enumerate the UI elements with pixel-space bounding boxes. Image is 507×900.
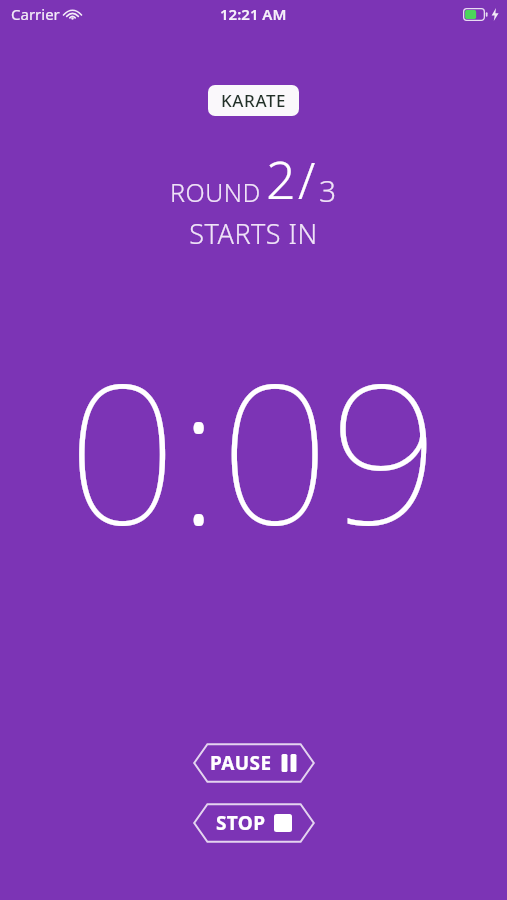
staticText: 2 bbox=[266, 143, 296, 214]
staticText: ROUND bbox=[170, 175, 261, 209]
staticText: STOP bbox=[216, 810, 266, 836]
staticText: / bbox=[298, 146, 316, 214]
other: Stop bbox=[274, 814, 292, 832]
staticText: KARATE bbox=[221, 89, 287, 112]
staticText: 3 bbox=[319, 170, 337, 211]
staticText: Carrier bbox=[11, 4, 60, 24]
button[interactable]: STOP bbox=[193, 803, 315, 843]
staticText: 12:21 AM bbox=[220, 4, 287, 24]
staticText: STARTS IN bbox=[189, 215, 318, 252]
button[interactable]: KARATE bbox=[208, 85, 299, 116]
other: Pause bbox=[280, 754, 298, 772]
button[interactable]: PAUSE bbox=[193, 743, 315, 783]
staticText: PAUSE bbox=[210, 750, 272, 776]
staticText: 0:09 bbox=[67, 318, 440, 581]
